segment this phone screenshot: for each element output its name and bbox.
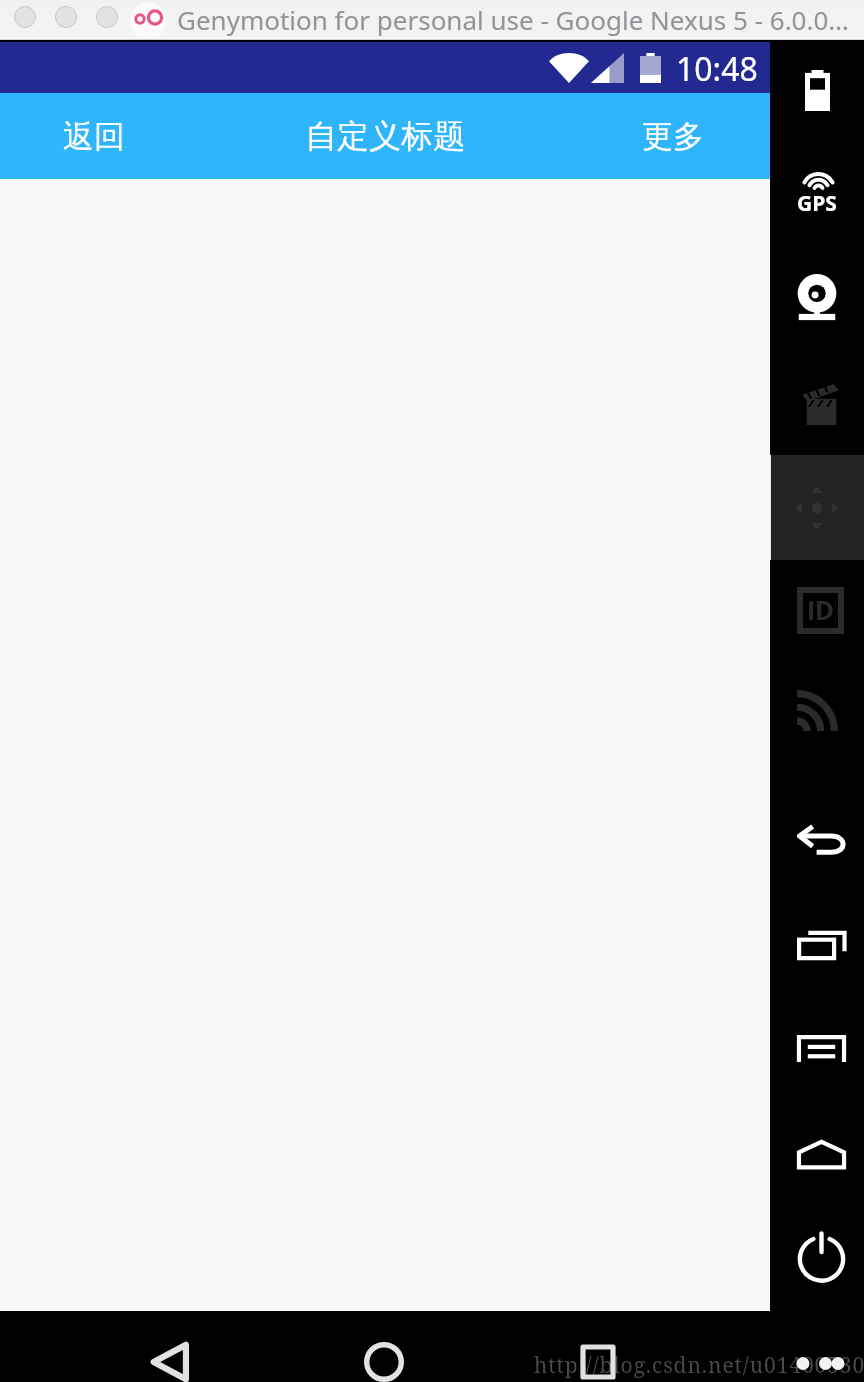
button[interactable]: Recent apps xyxy=(770,901,864,989)
button[interactable]: 更多 xyxy=(622,93,724,179)
button[interactable]: Menu xyxy=(770,1005,864,1093)
button[interactable]: Record xyxy=(770,360,864,448)
staticText: http://blog.csdn.net/u014005306 xyxy=(534,1351,864,1380)
button[interactable]: Camera xyxy=(770,254,864,342)
button[interactable]: Back xyxy=(139,1331,201,1382)
button[interactable]: GPS xyxy=(770,152,864,240)
button[interactable]: Back xyxy=(770,796,864,884)
button[interactable]: D-pad xyxy=(770,455,864,560)
staticText: Genymotion for personal use - Google Nex… xyxy=(177,2,849,37)
button[interactable]: Home xyxy=(353,1331,415,1382)
staticText: 返回 xyxy=(63,117,125,156)
button[interactable]: Power xyxy=(770,1213,864,1301)
button[interactable]: 返回 xyxy=(43,93,145,179)
button[interactable]: Recent apps xyxy=(567,1331,629,1382)
button[interactable]: Window button xyxy=(14,6,36,28)
staticText: GPS xyxy=(797,189,837,218)
button[interactable]: Home xyxy=(770,1110,864,1198)
button[interactable]: Window button xyxy=(55,6,77,28)
button[interactable]: Battery xyxy=(770,46,864,134)
button[interactable]: Window button xyxy=(96,6,118,28)
button[interactable]: Network xyxy=(770,666,864,754)
button[interactable]: 自定义标题 xyxy=(281,93,489,179)
staticText: 10:48 xyxy=(676,47,758,91)
button[interactable]: Device ID xyxy=(770,566,864,654)
staticText: 更多 xyxy=(642,117,704,156)
staticText: 自定义标题 xyxy=(305,116,465,156)
